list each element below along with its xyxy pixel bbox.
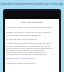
staticText: Rendez-vous dans l'onglet profil puis ap…: [6, 31, 51, 36]
staticText: Vérifiez votre identifiant et votre mot …: [6, 42, 53, 55]
staticText: Comment résilier mon offre ?: [6, 62, 37, 65]
staticText: Foire aux questions: [6, 21, 58, 24]
staticText: Quels moyens de paiement ?: [6, 57, 36, 60]
staticText: Comment créer un compte sur l'applicatio…: [6, 26, 52, 29]
staticText: Je n'arrive pas à me connecter: [6, 38, 37, 41]
staticText: Questions fréquemment posées sur notre a…: [0, 2, 64, 6]
